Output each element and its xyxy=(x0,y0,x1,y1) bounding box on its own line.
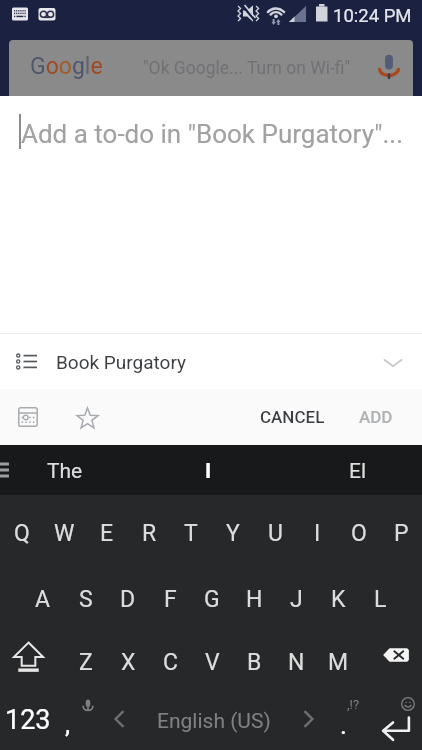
staticText: H xyxy=(246,586,263,613)
staticText: X xyxy=(121,649,136,676)
button[interactable]: H xyxy=(233,558,275,622)
staticText: D xyxy=(120,586,136,613)
button[interactable]: P xyxy=(380,495,422,558)
button[interactable]: Previous language xyxy=(100,686,140,750)
button[interactable]: N xyxy=(275,622,317,686)
button[interactable]: W xyxy=(43,495,86,558)
button[interactable]: El xyxy=(303,445,412,495)
button[interactable]: Next language xyxy=(288,686,328,750)
staticText: F xyxy=(164,586,177,613)
staticText: A xyxy=(35,586,51,613)
staticText: G xyxy=(204,586,220,613)
staticText: M xyxy=(328,649,349,676)
button[interactable]: The xyxy=(26,445,104,495)
staticText: ADD xyxy=(359,407,393,427)
staticText: El xyxy=(349,459,367,484)
button[interactable]: CANCEL xyxy=(247,389,338,445)
staticText: The xyxy=(47,459,83,484)
button[interactable]: ADD xyxy=(338,389,422,445)
button[interactable]: I xyxy=(104,445,313,495)
button[interactable]: English (US) xyxy=(140,686,288,750)
staticText: W xyxy=(54,520,75,547)
button[interactable]: Google xyxy=(9,40,413,96)
staticText: S xyxy=(79,586,93,613)
button[interactable]: G xyxy=(191,558,233,622)
staticText: ,!? xyxy=(347,697,360,712)
staticText: English (US) xyxy=(157,709,271,734)
button[interactable]: Enter xyxy=(362,686,422,750)
button[interactable]: 123 xyxy=(0,686,64,750)
staticText: N xyxy=(288,649,305,676)
button[interactable]: B xyxy=(233,622,275,686)
staticText: R xyxy=(142,520,157,547)
staticText: 10:24 PM xyxy=(333,5,412,27)
staticText: Book Purgatory xyxy=(56,351,187,373)
button[interactable]: O xyxy=(338,495,380,558)
button[interactable]: F xyxy=(149,558,191,622)
staticText: CANCEL xyxy=(260,407,325,427)
staticText: O xyxy=(351,520,367,547)
staticText: U xyxy=(268,520,283,547)
staticText: Google xyxy=(30,53,103,80)
staticText: , xyxy=(65,709,71,739)
button[interactable]: Backspace xyxy=(359,622,422,686)
button[interactable]: E xyxy=(86,495,128,558)
staticText: T xyxy=(184,520,198,547)
button[interactable]: V xyxy=(191,622,233,686)
button[interactable]: L xyxy=(359,558,401,622)
staticText: K xyxy=(331,586,346,613)
staticText: Q xyxy=(14,520,30,547)
staticText: C xyxy=(163,649,178,676)
staticText: J xyxy=(290,586,303,613)
button[interactable]: M xyxy=(317,622,359,686)
button[interactable]: A xyxy=(21,558,64,622)
button[interactable]: S xyxy=(64,558,107,622)
button[interactable]: Book Purgatory xyxy=(0,334,422,389)
button[interactable]: K xyxy=(317,558,359,622)
button[interactable]: Y xyxy=(212,495,254,558)
staticText: Z xyxy=(79,649,93,676)
button[interactable]: U xyxy=(254,495,296,558)
staticText: Y xyxy=(226,520,240,547)
button[interactable]: Q xyxy=(0,495,43,558)
staticText: I xyxy=(314,520,321,547)
staticText: 123 xyxy=(5,704,51,736)
staticText: "Ok Google... Turn on Wi-fi" xyxy=(143,58,351,79)
button[interactable]: D xyxy=(107,558,149,622)
button[interactable]: Star xyxy=(58,389,116,445)
other: Voice search xyxy=(375,53,403,81)
staticText: E xyxy=(100,520,114,547)
button[interactable]: Keyboard options xyxy=(0,445,26,495)
staticText: I xyxy=(205,459,212,484)
button[interactable]: Shift xyxy=(0,622,64,686)
button[interactable]: Set reminder xyxy=(0,389,58,445)
staticText: Add a to-do in "Book Purgatory"... xyxy=(21,119,404,149)
button[interactable]: J xyxy=(275,558,317,622)
button[interactable]: X xyxy=(107,622,149,686)
button[interactable]: . xyxy=(326,686,362,750)
button[interactable]: R xyxy=(128,495,170,558)
staticText: . xyxy=(340,710,347,740)
button[interactable]: Z xyxy=(64,622,107,686)
button[interactable]: I xyxy=(296,495,338,558)
staticText: V xyxy=(205,649,220,676)
staticText: P xyxy=(394,520,409,547)
staticText: B xyxy=(247,649,262,676)
button[interactable]: , xyxy=(64,686,112,750)
button[interactable]: T xyxy=(170,495,212,558)
button[interactable]: C xyxy=(149,622,191,686)
staticText: L xyxy=(374,586,387,613)
